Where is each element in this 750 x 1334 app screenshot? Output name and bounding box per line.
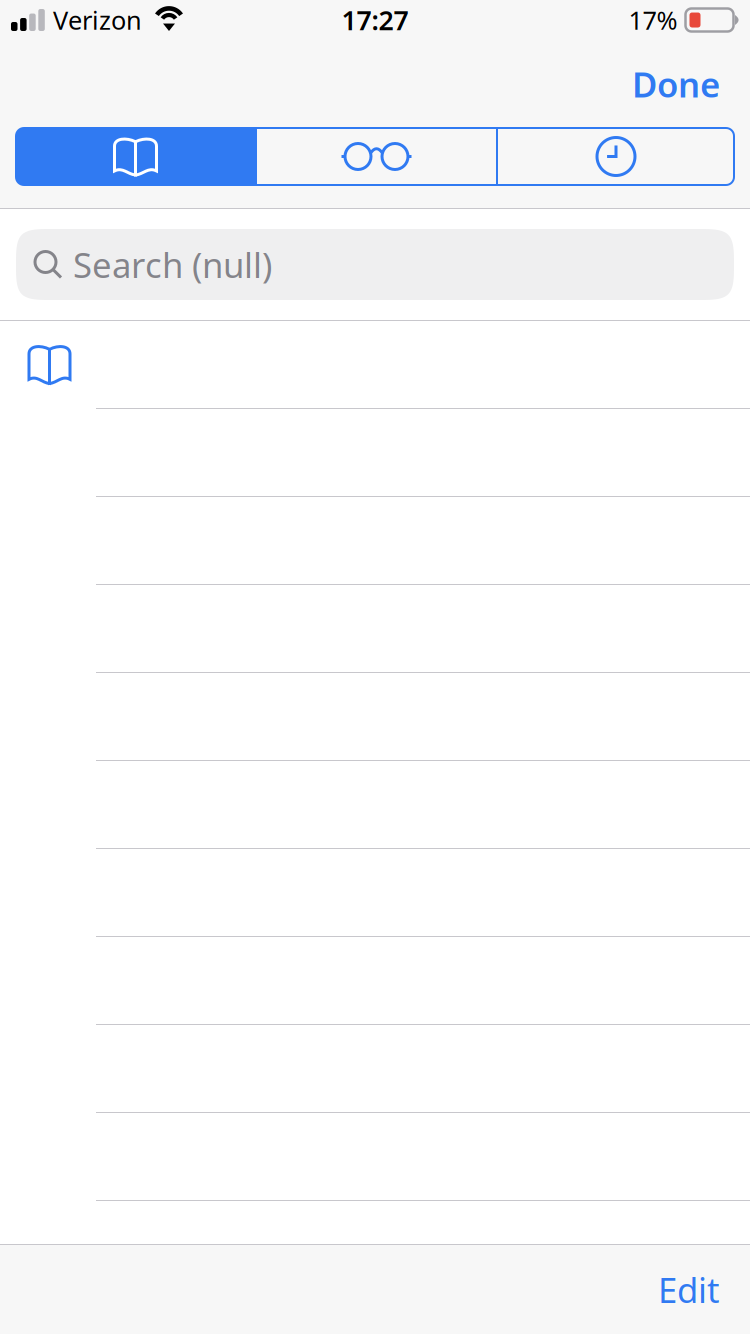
button[interactable]: History [498, 128, 734, 185]
button[interactable]: Bookmarks [16, 128, 255, 185]
button[interactable]: Done [632, 51, 750, 117]
button[interactable] [0, 1113, 750, 1201]
staticText: Verizon [53, 3, 142, 37]
button[interactable] [0, 409, 750, 497]
button[interactable] [0, 1025, 750, 1113]
staticText: 17:27 [341, 2, 408, 38]
staticText: Edit [658, 1266, 720, 1312]
button[interactable] [0, 321, 750, 409]
button[interactable] [0, 937, 750, 1025]
button[interactable] [0, 761, 750, 849]
staticText: Search (null) [73, 241, 272, 287]
button[interactable] [0, 849, 750, 937]
button[interactable]: Edit [658, 1252, 750, 1326]
staticText: 17% [628, 3, 677, 37]
button[interactable] [0, 585, 750, 673]
button[interactable] [0, 673, 750, 761]
staticText: Done [632, 61, 720, 107]
button[interactable]: Reading List [257, 128, 496, 185]
button[interactable] [0, 497, 750, 585]
